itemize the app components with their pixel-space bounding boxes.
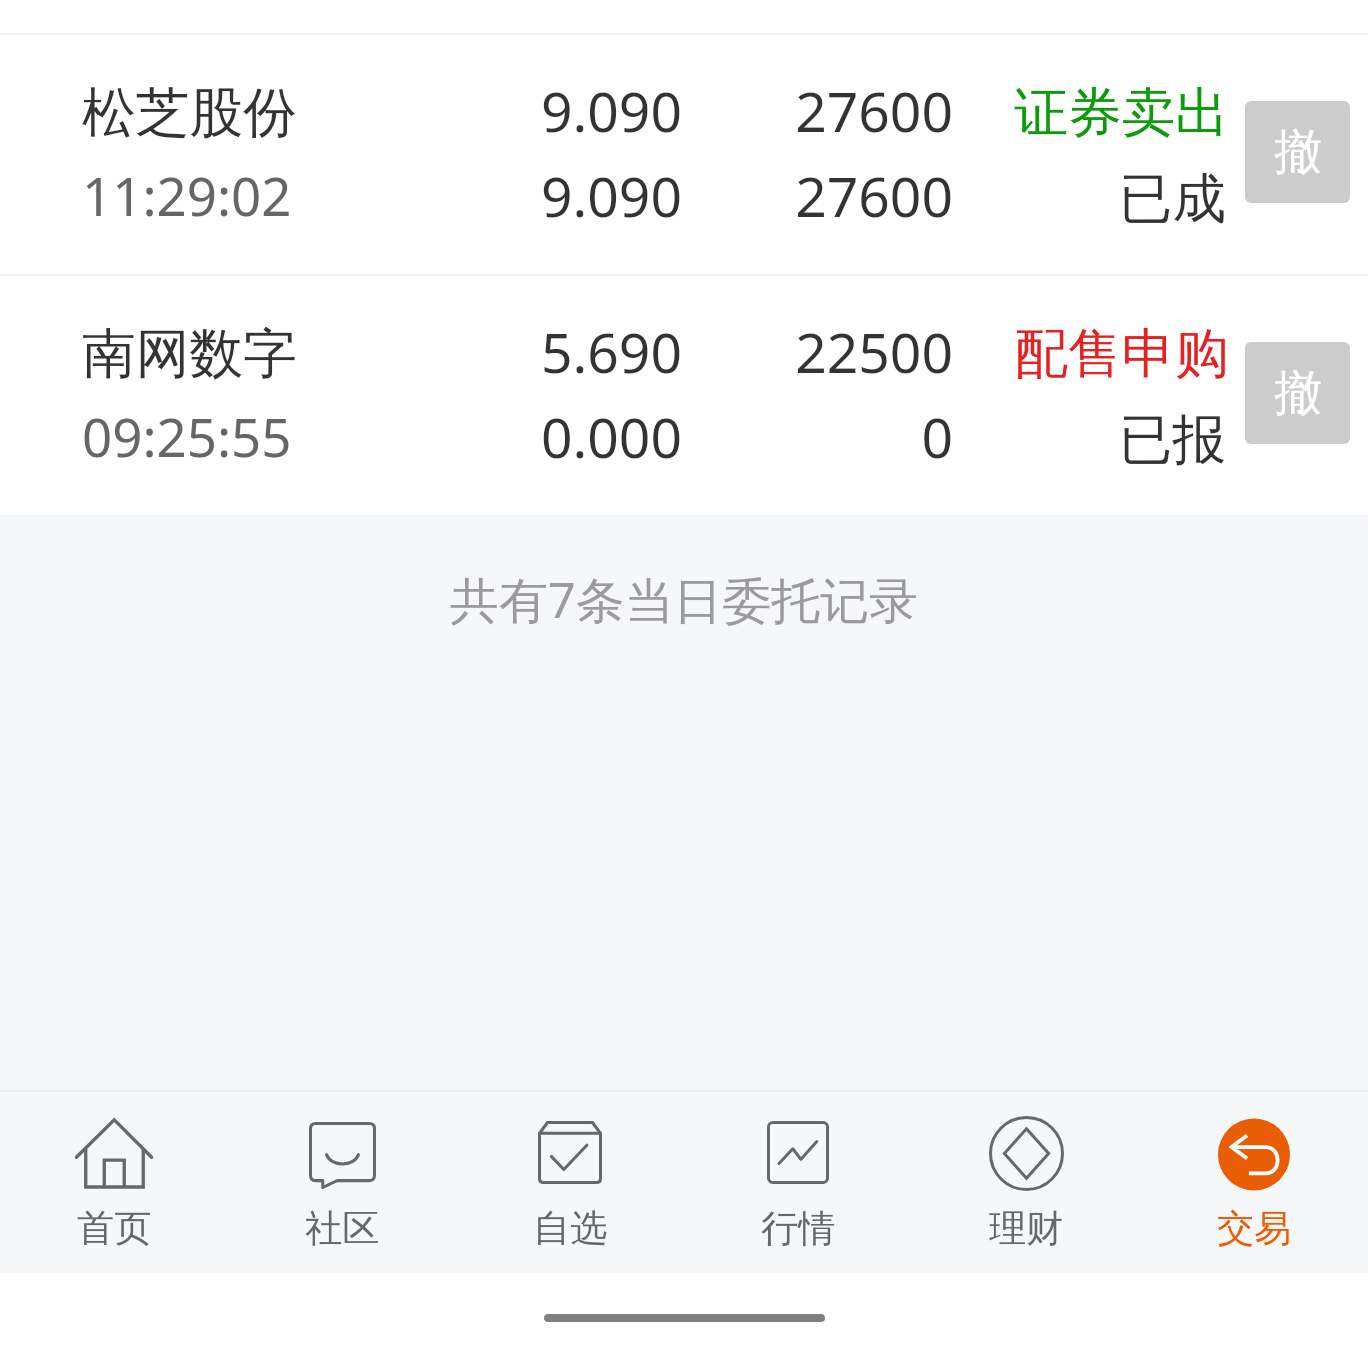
staticText: 配售申购 — [1014, 320, 1229, 388]
staticText: 已成 — [1118, 165, 1226, 233]
button[interactable]: Trade — [1140, 1092, 1368, 1273]
staticText: 交易 — [1217, 1205, 1292, 1252]
staticText: 27600 — [795, 73, 953, 148]
button[interactable]: Markets — [684, 1092, 912, 1273]
staticText: 共有7条当日委托记录 — [450, 566, 918, 633]
staticText: 撤 — [1274, 122, 1322, 182]
staticText: 自选 — [533, 1205, 608, 1252]
button[interactable]: Wealth — [912, 1092, 1140, 1273]
button[interactable]: 撤单 — [1245, 342, 1350, 444]
staticText: 行情 — [761, 1205, 836, 1252]
staticText: 南网数字 — [82, 320, 297, 388]
staticText: 证券卖出 — [1014, 79, 1229, 147]
staticText: 首页 — [77, 1205, 152, 1252]
staticText: 09:25:55 — [82, 401, 292, 473]
staticText: 0 — [921, 399, 953, 474]
staticText: 9.090 — [540, 158, 682, 233]
button[interactable]: 松芝股份 — [0, 35, 1368, 274]
button[interactable]: Watchlist — [456, 1092, 684, 1273]
staticText: 27600 — [795, 158, 953, 233]
button[interactable]: Home — [0, 1092, 228, 1273]
staticText: 社区 — [305, 1205, 380, 1252]
staticText: 松芝股份 — [82, 79, 297, 147]
staticText: 理财 — [989, 1205, 1064, 1252]
button[interactable]: 撤单 — [1245, 101, 1350, 203]
staticText: 22500 — [795, 314, 953, 389]
staticText: 9.090 — [540, 73, 682, 148]
staticText: 0.000 — [540, 399, 682, 474]
button[interactable]: Community — [228, 1092, 456, 1273]
button[interactable]: 南网数字 — [0, 276, 1368, 515]
staticText: 已报 — [1118, 406, 1226, 474]
staticText: 撤 — [1274, 363, 1322, 423]
staticText: 11:29:02 — [82, 160, 292, 232]
staticText: 5.690 — [540, 314, 682, 389]
